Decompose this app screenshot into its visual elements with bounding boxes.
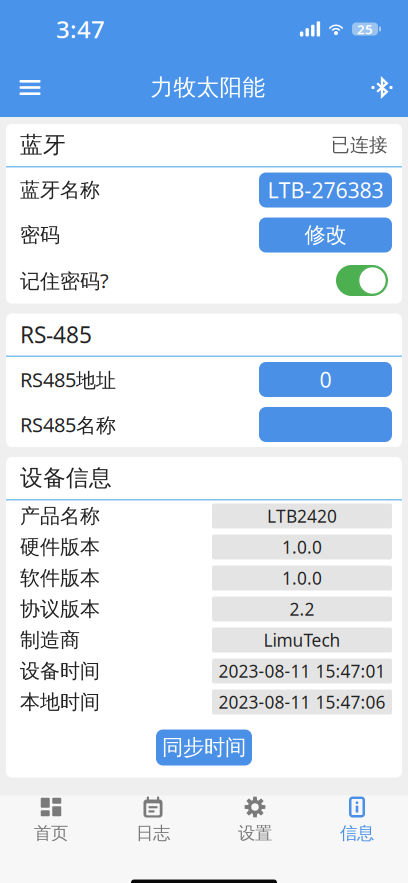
staticText: 记住密码? [20, 267, 109, 294]
staticText: 修改 [304, 222, 346, 248]
button[interactable]: 首页 [0, 796, 102, 844]
button[interactable]: 日志 [102, 796, 204, 844]
staticText: 1.0.0 [282, 535, 322, 558]
button[interactable]: LTB-276383 [259, 172, 392, 207]
button[interactable]: Bluetooth [356, 58, 408, 117]
staticText: LTB-276383 [267, 176, 383, 204]
button[interactable] [259, 407, 392, 442]
staticText: LimuTech [263, 628, 340, 651]
staticText: 日志 [136, 822, 170, 844]
staticText: RS485地址 [20, 366, 116, 393]
staticText: 同步时间 [162, 734, 246, 761]
staticText: 协议版本 [20, 597, 100, 621]
staticText: 软件版本 [20, 566, 100, 590]
button[interactable]: 0 [259, 362, 392, 397]
staticText: 信息 [340, 822, 374, 844]
staticText: 已连接 [331, 133, 388, 156]
staticText: 设备信息 [20, 464, 112, 492]
staticText: 设备时间 [20, 659, 100, 683]
staticText: 2.2 [289, 597, 314, 620]
staticText: 产品名称 [20, 504, 100, 528]
staticText: 2023-08-11 15:47:06 [218, 690, 385, 713]
staticText: 硬件版本 [20, 535, 100, 559]
button[interactable]: Menu [0, 58, 60, 117]
staticText: RS485名称 [20, 411, 116, 438]
button[interactable]: Remember password [336, 265, 388, 296]
button[interactable]: 同步时间 [156, 729, 252, 765]
staticText: 3:47 [56, 13, 105, 45]
staticText: 力牧太阳能 [150, 74, 265, 101]
staticText: RS-485 [20, 319, 92, 349]
staticText: 0 [319, 365, 331, 394]
staticText: LTB2420 [267, 504, 337, 527]
staticText: 制造商 [20, 628, 80, 652]
staticText: 首页 [34, 822, 68, 844]
staticText: 密码 [20, 223, 60, 247]
staticText: 1.0.0 [282, 566, 322, 589]
staticText: 蓝牙 [20, 131, 66, 159]
staticText: 本地时间 [20, 690, 100, 714]
button[interactable]: 设置 [204, 796, 306, 844]
staticText: 25 [357, 20, 373, 38]
staticText: 设置 [238, 822, 272, 844]
button[interactable]: 修改 [259, 217, 392, 252]
staticText: 2023-08-11 15:47:01 [218, 659, 385, 682]
staticText: 蓝牙名称 [20, 178, 100, 202]
button[interactable]: 信息 [306, 796, 408, 844]
